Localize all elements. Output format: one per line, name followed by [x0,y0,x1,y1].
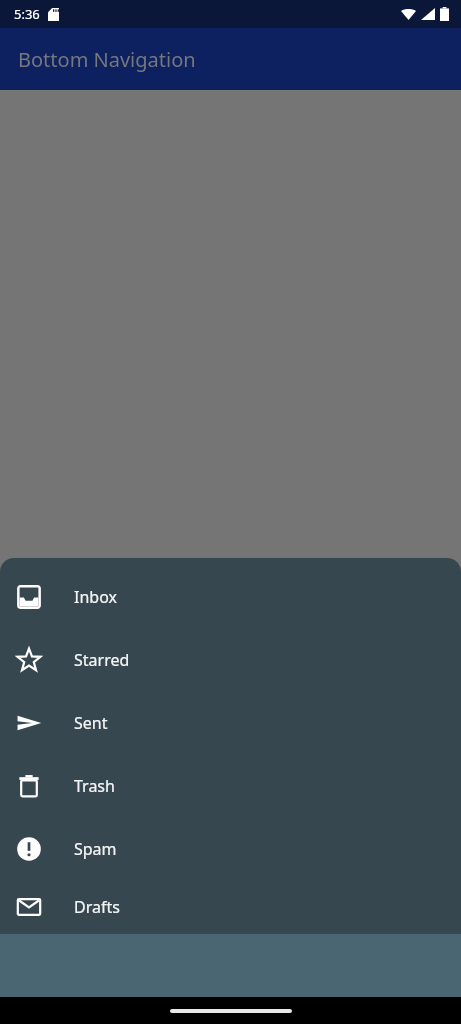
button[interactable]: Starred [0,628,461,691]
staticText: Inbox [74,586,117,608]
button[interactable]: Drafts [0,880,461,934]
staticText: Drafts [74,896,120,918]
staticText: Bottom Navigation [18,46,196,73]
staticText: Trash [74,775,115,797]
button[interactable]: Trash [0,754,461,817]
button[interactable]: Sent [0,691,461,754]
button[interactable]: Spam [0,817,461,880]
button[interactable]: Inbox [0,565,461,628]
staticText: Sent [74,712,108,734]
staticText: Spam [74,838,117,860]
staticText: Starred [74,649,130,671]
staticText: 5:36 [14,5,40,23]
